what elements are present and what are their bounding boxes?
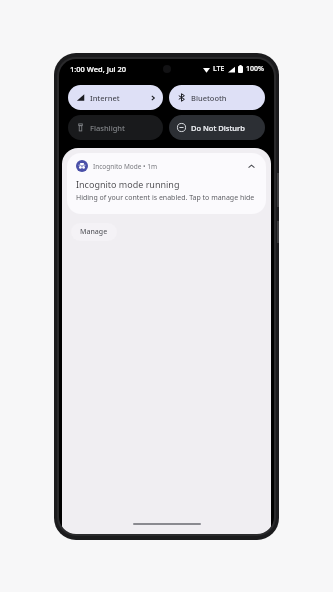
button[interactable]: Flashlight [68,115,163,140]
button[interactable]: Do Not Disturb [169,115,265,140]
staticText: Flashlight [90,123,156,133]
staticText: Bluetooth [191,93,258,103]
button[interactable]: Bluetooth [169,85,265,110]
button[interactable]: Incognito Mode • 1m [67,153,266,214]
staticText: 1:00 Wed, Jul 20 [70,64,127,74]
staticText: Incognito mode running [76,178,180,190]
staticText: Do Not Disturb [191,123,258,133]
button[interactable]: Internet [68,85,163,110]
staticText: Hiding of your content is enabled. Tap t… [76,193,255,203]
button[interactable]: Manage [71,223,117,241]
staticText: Manage [80,227,108,237]
staticText: LTE [213,64,225,74]
staticText: 100% [246,64,264,74]
staticText: Internet [90,93,150,103]
button[interactable]: Collapse notification [245,160,257,172]
staticText: Incognito Mode • 1m [93,162,245,171]
